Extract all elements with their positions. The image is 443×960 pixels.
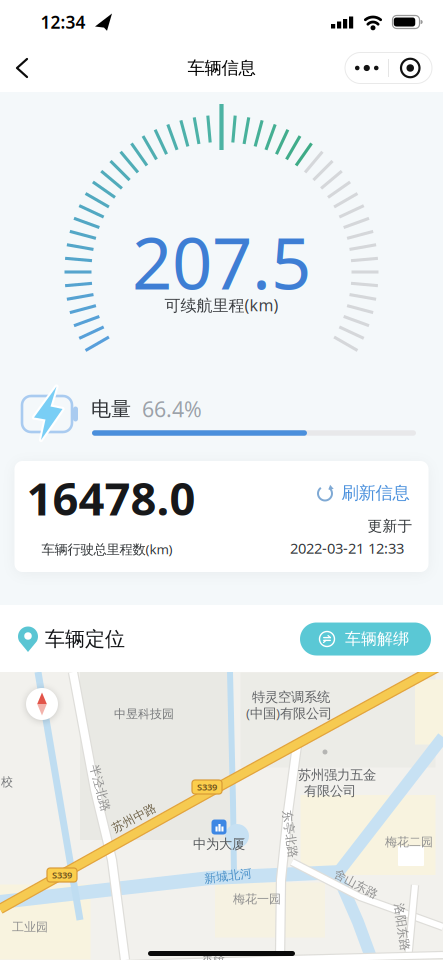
staticText: 东路 bbox=[201, 950, 225, 960]
staticText: 中为大厦 bbox=[193, 836, 245, 852]
button[interactable]: Back bbox=[13, 53, 43, 83]
staticText: 梅花一园 bbox=[233, 892, 281, 906]
staticText: 刷新信息 bbox=[341, 482, 409, 504]
staticText: 207.5 bbox=[132, 215, 311, 309]
staticText: 有限公司 bbox=[304, 783, 356, 799]
staticText: S339 bbox=[52, 869, 72, 881]
staticText: 16478.0 bbox=[26, 468, 195, 528]
staticText: 中昱科技园 bbox=[114, 707, 174, 721]
staticText: 2022-03-21 12:33 bbox=[290, 538, 404, 558]
button[interactable]: 刷新信息 bbox=[316, 482, 409, 504]
staticText: 洛阳东路 bbox=[378, 920, 426, 934]
staticText: S339 bbox=[197, 781, 217, 793]
staticText: 校 bbox=[1, 775, 13, 789]
staticText: 车辆定位 bbox=[45, 627, 125, 651]
staticText: 电量 bbox=[91, 397, 131, 421]
staticText: 苏州强力五金 bbox=[298, 767, 376, 783]
staticText: 新城北河 bbox=[204, 869, 252, 883]
staticText: (中国)有限公司 bbox=[246, 704, 332, 722]
staticText: 工业园 bbox=[12, 920, 48, 934]
staticText: 半泾北路 bbox=[76, 781, 124, 795]
button[interactable]: 车辆解绑 bbox=[300, 622, 431, 655]
staticText: 东亭北路 bbox=[266, 827, 314, 841]
staticText: 车辆解绑 bbox=[345, 629, 409, 649]
staticText: 梅花二园 bbox=[385, 835, 433, 849]
staticText: 舍山东路 bbox=[332, 877, 380, 891]
staticText: 特灵空调系统 bbox=[252, 689, 330, 705]
staticText: 66.4% bbox=[142, 395, 202, 423]
staticText: 可续航里程(km) bbox=[164, 294, 278, 316]
staticText: 车辆行驶总里程数(km) bbox=[41, 540, 172, 558]
button[interactable]: Close bbox=[389, 52, 432, 83]
staticText: 苏州中路 bbox=[110, 811, 158, 825]
staticText: 车辆信息 bbox=[187, 57, 255, 79]
staticText: 12:34 bbox=[40, 10, 85, 33]
button[interactable]: More bbox=[345, 52, 388, 83]
staticText: 更新于 bbox=[367, 517, 412, 535]
